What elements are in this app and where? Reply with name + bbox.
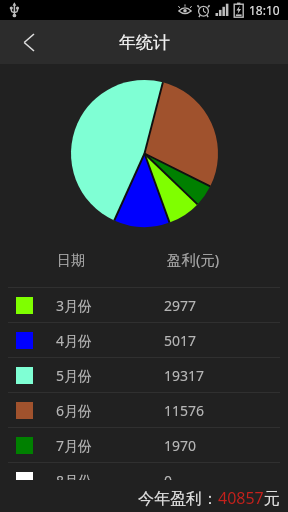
staticText: 5017 — [164, 331, 197, 350]
button[interactable]: 3月份 — [0, 288, 288, 323]
staticText: 盈利(元) — [167, 249, 220, 269]
staticText: 2977 — [164, 296, 197, 315]
staticText: 18:10 — [249, 2, 280, 18]
staticText: 7月份 — [56, 436, 93, 455]
staticText: 4月份 — [56, 331, 93, 350]
staticText: 8月份 — [56, 471, 93, 490]
staticText: 今年盈利：40857元 — [138, 487, 280, 509]
staticText: 0 — [164, 471, 173, 490]
button[interactable]: 7月份 — [0, 428, 288, 463]
staticText: 6月份 — [56, 401, 93, 420]
button[interactable]: Back — [0, 20, 52, 64]
staticText: 5月份 — [56, 366, 93, 385]
button[interactable]: 6月份 — [0, 393, 288, 428]
button[interactable]: 5月份 — [0, 358, 288, 393]
staticText: 19317 — [164, 366, 205, 385]
button[interactable]: 4月份 — [0, 323, 288, 358]
staticText: 11576 — [164, 401, 205, 420]
button[interactable]: 8月份 — [0, 463, 288, 498]
staticText: 1970 — [164, 436, 197, 455]
staticText: 日期 — [57, 252, 85, 270]
staticText: 年统计 — [119, 32, 170, 53]
staticText: 3月份 — [56, 296, 93, 315]
